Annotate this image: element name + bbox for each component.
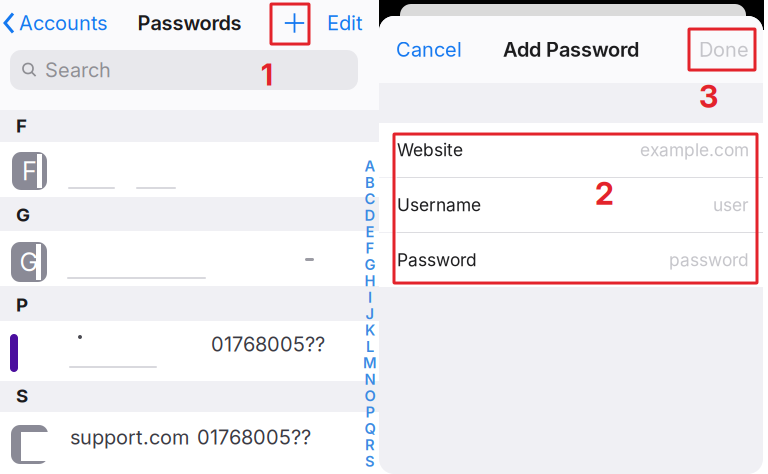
button[interactable]: Username: [379, 178, 763, 232]
staticText: P: [16, 293, 28, 316]
staticText: N: [364, 370, 375, 388]
button[interactable]: Section index: [0, 0, 376, 470]
staticText: 01768005??: [211, 332, 325, 356]
staticText: H: [364, 272, 375, 290]
button[interactable]: Edit: [313, 0, 379, 47]
button[interactable]: Accounts: [0, 0, 107, 47]
button[interactable]: G: [0, 231, 379, 286]
staticText: password: [669, 249, 749, 270]
staticText: user: [713, 194, 749, 215]
staticText: G: [16, 203, 30, 226]
button[interactable]: Password: [379, 233, 763, 287]
staticText: C: [364, 190, 375, 208]
staticText: G: [364, 256, 375, 273]
staticText: F: [22, 156, 37, 186]
staticText: Accounts: [19, 11, 107, 35]
button[interactable]: Add Password: [276, 3, 313, 42]
staticText: support.com: [70, 425, 189, 449]
button[interactable]: 01768005??: [0, 321, 379, 381]
button[interactable]: Website: [379, 123, 763, 177]
staticText: S: [16, 384, 28, 407]
staticText: F: [365, 239, 374, 257]
staticText: Done: [699, 37, 749, 62]
staticText: R: [365, 436, 375, 454]
staticText: M: [363, 354, 377, 372]
staticText: 2: [595, 175, 614, 212]
button[interactable]: F: [0, 142, 379, 197]
button[interactable]: Done: [689, 15, 763, 84]
staticText: J: [365, 305, 374, 323]
button[interactable]: support.com: [0, 412, 379, 474]
staticText: F: [16, 114, 27, 137]
staticText: example.com: [640, 139, 749, 160]
staticText: O: [364, 387, 375, 405]
staticText: 01768005??: [197, 425, 311, 449]
staticText: A: [364, 157, 375, 175]
staticText: K: [365, 321, 375, 339]
staticText: Cancel: [396, 37, 462, 62]
staticText: Password: [397, 249, 477, 270]
staticText: B: [365, 174, 375, 191]
staticText: Search: [45, 58, 111, 82]
staticText: G: [19, 247, 38, 277]
staticText: 1: [261, 57, 273, 92]
staticText: Website: [397, 139, 463, 160]
staticText: 3: [699, 78, 718, 115]
staticText: P: [365, 403, 374, 421]
staticText: D: [364, 206, 375, 224]
staticText: Edit: [327, 11, 363, 35]
staticText: L: [366, 338, 374, 355]
button[interactable]: Cancel: [379, 15, 472, 84]
staticText: E: [365, 223, 374, 241]
staticText: Q: [364, 420, 375, 437]
staticText: Username: [397, 194, 481, 215]
staticText: I: [368, 288, 372, 306]
staticText: S: [365, 452, 375, 470]
staticText: Passwords: [137, 11, 241, 35]
staticText: Add Password: [503, 37, 639, 62]
